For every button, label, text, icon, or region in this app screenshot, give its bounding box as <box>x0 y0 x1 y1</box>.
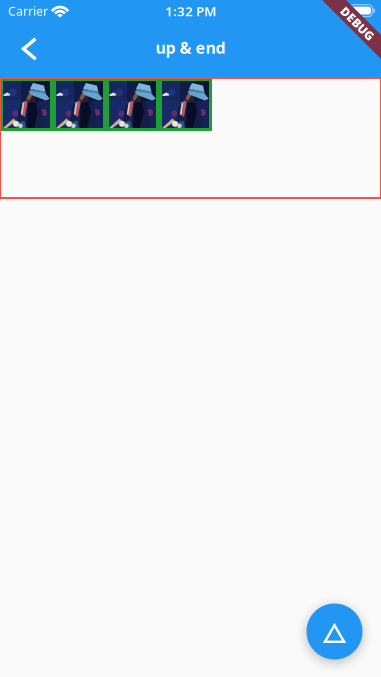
staticText: Carrier <box>8 3 48 19</box>
button[interactable]: Add <box>306 603 362 659</box>
staticText: DEBUG <box>336 15 378 31</box>
staticText: 1:32 PM <box>165 2 216 20</box>
staticText: up & end <box>155 37 225 58</box>
button[interactable]: Back <box>0 23 50 77</box>
